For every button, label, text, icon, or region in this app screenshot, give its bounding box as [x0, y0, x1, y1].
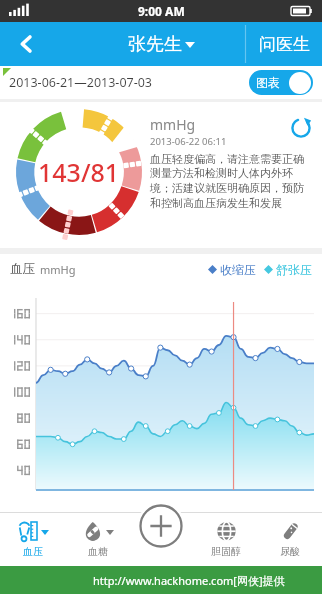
button[interactable]: Refresh	[288, 115, 314, 141]
staticText: http://www.hackhome.com[网侠]提供	[93, 573, 285, 588]
staticText: 血压	[10, 261, 35, 277]
staticText: mmHg	[40, 262, 76, 277]
staticText: 收缩压	[220, 262, 256, 277]
staticText: 9:00 AM	[138, 3, 185, 19]
staticText: 血压	[23, 545, 43, 558]
staticText: 尿酸	[280, 545, 300, 558]
staticText: 舒张压	[276, 262, 312, 277]
staticText: mmHg	[150, 115, 196, 134]
button[interactable]: 收缩压	[208, 262, 256, 277]
staticText: 张先生	[128, 33, 182, 56]
button[interactable]: 尿酸	[258, 512, 322, 566]
staticText: 2013-06-22 06:11	[150, 135, 227, 148]
staticText: 问医生	[259, 34, 310, 55]
button[interactable]: 血压	[0, 512, 65, 566]
staticText: 血压轻度偏高，请注意需要正确测量方法和检测时人体内外环境；活建议就医明确原因，预…	[150, 152, 314, 210]
button[interactable]: 舒张压	[264, 262, 312, 277]
button[interactable]: 问医生	[246, 22, 322, 66]
staticText: 胆固醇	[211, 545, 241, 558]
button[interactable]: 张先生	[128, 33, 195, 56]
staticText: 图表	[256, 75, 280, 90]
button[interactable]: 血糖	[65, 512, 130, 566]
button[interactable]: Add record	[137, 502, 185, 550]
button[interactable]: 胆固醇	[194, 512, 258, 566]
button[interactable]: Back	[0, 22, 52, 66]
staticText: 血糖	[88, 545, 108, 558]
staticText: 2013-06-21—2013-07-03	[9, 74, 153, 91]
button[interactable]: 图表	[249, 70, 313, 95]
staticText: 143/81	[38, 155, 120, 189]
